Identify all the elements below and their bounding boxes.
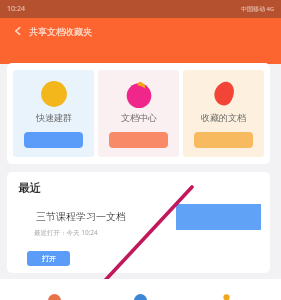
staticText: 10:24 xyxy=(7,4,25,14)
staticText: 打开 xyxy=(42,254,56,263)
staticText: 最近打开：今天 10:24 xyxy=(34,228,98,237)
button[interactable]: 文档中心 xyxy=(98,70,179,157)
button[interactable]: Back xyxy=(11,24,25,38)
button[interactable]: 快速建群 xyxy=(13,70,94,157)
button[interactable]: Mine xyxy=(183,279,269,300)
button[interactable]: 打开 xyxy=(27,251,70,266)
staticText: 三节课程学习一文档 xyxy=(36,210,126,223)
staticText: 快速建群 xyxy=(36,112,72,123)
button[interactable]: Documents xyxy=(97,279,183,300)
staticText: 共享文档收藏夹 xyxy=(29,26,92,37)
staticText: 收藏的文档 xyxy=(201,112,246,123)
staticText: 文档中心 xyxy=(121,112,157,123)
button[interactable]: 三节课程学习一文档 xyxy=(7,210,270,266)
button[interactable]: 收藏的文档 xyxy=(183,70,264,157)
staticText: 最近 xyxy=(18,181,41,195)
staticText: 中国移动 4G xyxy=(241,5,275,13)
button[interactable]: Messages xyxy=(12,279,97,300)
